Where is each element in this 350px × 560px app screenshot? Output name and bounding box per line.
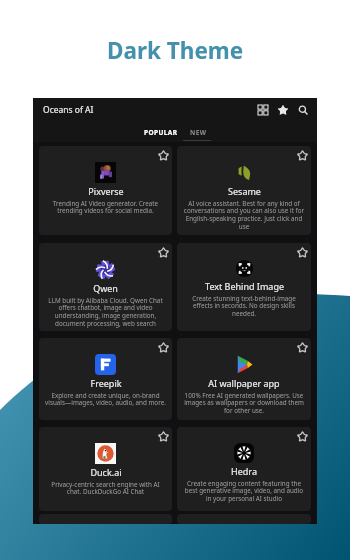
staticText: Trending AI Video generator. Create tren… [44, 199, 167, 215]
staticText: Explore and create unique, on-brand visu… [44, 391, 167, 407]
button[interactable]: Favorite [177, 338, 311, 420]
staticText: Hedra [231, 465, 257, 477]
button[interactable]: Favorite [39, 427, 172, 511]
button[interactable]: NEW [184, 125, 213, 140]
staticText: POPULAR [144, 128, 178, 137]
staticText: Create engaging content featuring the be… [182, 479, 306, 503]
button[interactable]: Favorite [39, 146, 172, 235]
button[interactable]: Search [293, 100, 313, 120]
button[interactable]: Favorite [295, 429, 309, 443]
staticText: Pixverse [88, 185, 124, 197]
staticText: Qwen [93, 282, 118, 294]
button[interactable]: Favorites [273, 100, 293, 120]
button[interactable]: Favorite [39, 338, 172, 420]
staticText: 100% Free AI generated wallpapers. Use i… [182, 391, 306, 415]
staticText: NEW [190, 128, 207, 137]
button[interactable]: Favorite [156, 148, 170, 162]
staticText: Create stunning text-behind-image effect… [182, 294, 306, 318]
staticText: Sesame [228, 185, 261, 197]
button[interactable]: Favorite [156, 340, 170, 354]
button[interactable]: Favorite [295, 340, 309, 354]
button[interactable]: POPULAR [138, 125, 184, 140]
staticText: Duck.ai [90, 466, 122, 478]
button[interactable]: Grid view [253, 100, 273, 120]
button[interactable]: Favorite [177, 243, 311, 331]
staticText: Privacy-centric search engine with AI ch… [44, 480, 167, 496]
button[interactable]: Favorite [295, 148, 309, 162]
staticText: Text Behind Image [205, 280, 284, 292]
button[interactable]: Favorite [156, 429, 170, 443]
staticText: Dark Theme [107, 35, 244, 66]
staticText: Freepik [90, 377, 122, 389]
button[interactable]: Favorite [177, 427, 311, 511]
button[interactable]: Favorite [177, 146, 311, 235]
staticText: AI voice assistant. Best for any kind of… [182, 199, 306, 231]
button[interactable]: Favorite [39, 243, 172, 331]
button[interactable]: Favorite [295, 245, 309, 259]
staticText: Oceans of AI [43, 104, 94, 116]
staticText: AI wallpaper app [208, 377, 280, 389]
staticText: LLM built by Alibaba Cloud. Qwen Chat of… [44, 296, 167, 328]
button[interactable]: Favorite [156, 245, 170, 259]
